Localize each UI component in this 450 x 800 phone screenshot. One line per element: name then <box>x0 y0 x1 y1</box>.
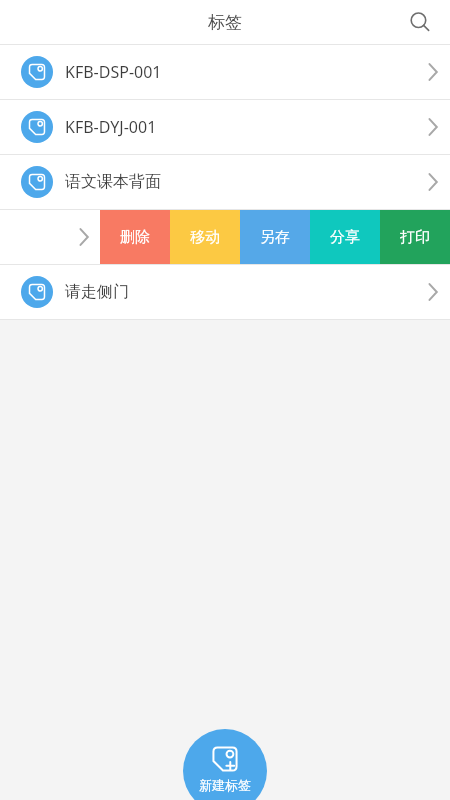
button[interactable]: 语文课本背面 <box>0 155 450 209</box>
button[interactable]: KFB-DSP-001 <box>0 45 450 99</box>
button[interactable]: 请走侧门 <box>0 265 450 319</box>
button[interactable]: KFB-DYJ-001 <box>0 100 450 154</box>
button[interactable]: 删除 <box>100 210 170 264</box>
button[interactable]: 新建标签 <box>183 729 267 800</box>
staticText: 新建标签 <box>199 777 251 793</box>
staticText: 打印 <box>400 228 430 247</box>
staticText: 标签 <box>208 12 242 33</box>
button[interactable] <box>0 210 100 264</box>
button[interactable]: Search <box>398 0 442 44</box>
staticText: 删除 <box>120 228 150 247</box>
staticText: 另存 <box>260 228 290 247</box>
button[interactable]: 移动 <box>170 210 240 264</box>
button[interactable]: 另存 <box>240 210 310 264</box>
staticText: KFB-DYJ-001 <box>65 116 157 138</box>
staticText: 请走侧门 <box>65 282 129 302</box>
staticText: KFB-DSP-001 <box>65 61 162 83</box>
staticText: 语文课本背面 <box>65 172 161 192</box>
button[interactable]: 分享 <box>310 210 380 264</box>
staticText: 移动 <box>190 228 220 247</box>
button[interactable]: 打印 <box>380 210 450 264</box>
staticText: 分享 <box>330 228 360 247</box>
